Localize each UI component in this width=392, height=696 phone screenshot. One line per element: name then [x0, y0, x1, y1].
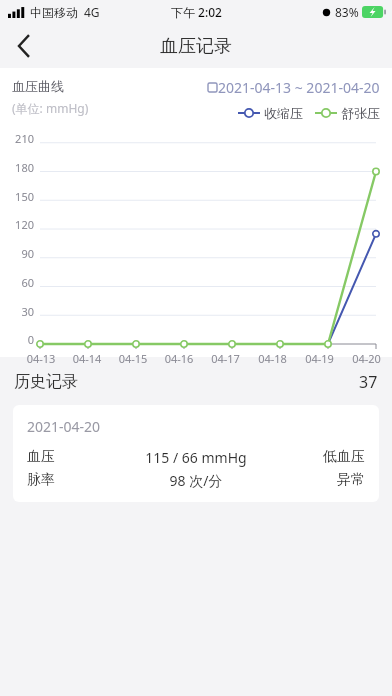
staticText: 脉率: [27, 471, 121, 489]
staticText: 210: [0, 131, 34, 146]
staticText: 180: [0, 160, 34, 175]
staticText: 血压: [27, 448, 121, 466]
staticText: 98 次/分: [121, 471, 271, 490]
staticText: 历史记录: [14, 372, 78, 392]
staticText: 中国移动: [30, 5, 78, 20]
button[interactable]: 收缩压: [238, 105, 303, 121]
button[interactable]: Back: [0, 24, 48, 68]
staticText: 04-17: [202, 351, 249, 366]
staticText: 04-18: [249, 351, 296, 366]
staticText: 舒张压: [341, 105, 380, 121]
staticText: 04-19: [296, 351, 343, 366]
button[interactable]: 2021-04-13 ~ 2021-04-20: [208, 78, 380, 97]
staticText: 血压曲线: [12, 78, 64, 94]
staticText: 83%: [335, 4, 359, 20]
button[interactable]: 2021-04-20: [13, 405, 379, 502]
staticText: 115 / 66 mmHg: [121, 448, 271, 467]
staticText: 4G: [84, 4, 100, 20]
staticText: 低血压: [271, 448, 365, 466]
staticText: 90: [0, 246, 34, 261]
staticText: 异常: [271, 471, 365, 489]
staticText: 04-20: [343, 351, 390, 366]
staticText: 150: [0, 189, 34, 204]
staticText: (单位: mmHg): [12, 100, 89, 116]
staticText: 04-13: [18, 351, 64, 366]
staticText: 37: [359, 371, 378, 393]
staticText: 2021-04-20: [27, 417, 101, 436]
staticText: 收缩压: [264, 105, 303, 121]
staticText: 04-15: [110, 351, 156, 366]
staticText: 血压记录: [160, 35, 232, 58]
staticText: 04-14: [64, 351, 110, 366]
staticText: 04-16: [156, 351, 202, 366]
staticText: 2021-04-13 ~ 2021-04-20: [218, 78, 380, 97]
staticText: 30: [0, 304, 34, 319]
button[interactable]: 舒张压: [315, 105, 380, 121]
staticText: 60: [0, 275, 34, 290]
staticText: 120: [0, 217, 34, 232]
staticText: 0: [0, 332, 34, 347]
staticText: 下午 2:02: [171, 4, 222, 20]
